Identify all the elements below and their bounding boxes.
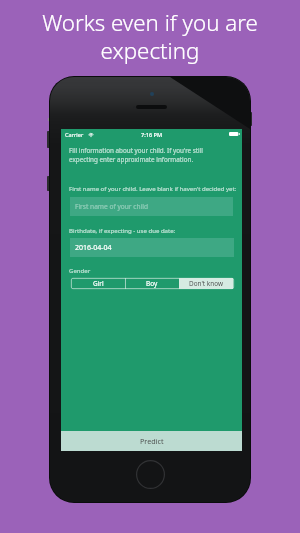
- staticText: Boy: [146, 279, 158, 288]
- button[interactable]: Don't know: [179, 278, 233, 289]
- button[interactable]: Boy: [125, 278, 179, 289]
- staticText: Fill information about your child. If yo…: [69, 146, 205, 164]
- staticText: Birthdate, if expecting - use due date:: [69, 227, 176, 235]
- staticText: First name of your child. Leave blank if…: [69, 185, 237, 193]
- staticText: Girl: [93, 279, 104, 288]
- staticText: First name of your child: [75, 202, 149, 211]
- staticText: 2016-04-04: [75, 243, 112, 253]
- staticText: 7:16 PM: [141, 131, 163, 139]
- button[interactable]: Predict: [61, 431, 242, 451]
- staticText: Don't know: [189, 279, 223, 288]
- staticText: Carrier: [65, 131, 84, 139]
- staticText: Works even if you are expecting: [38, 7, 262, 66]
- button[interactable]: First name of your child: [70, 197, 233, 216]
- button[interactable]: Girl: [71, 278, 125, 289]
- staticText: Gender: [69, 267, 91, 275]
- staticText: Predict: [140, 436, 164, 446]
- button[interactable]: 2016-04-04: [70, 238, 234, 257]
